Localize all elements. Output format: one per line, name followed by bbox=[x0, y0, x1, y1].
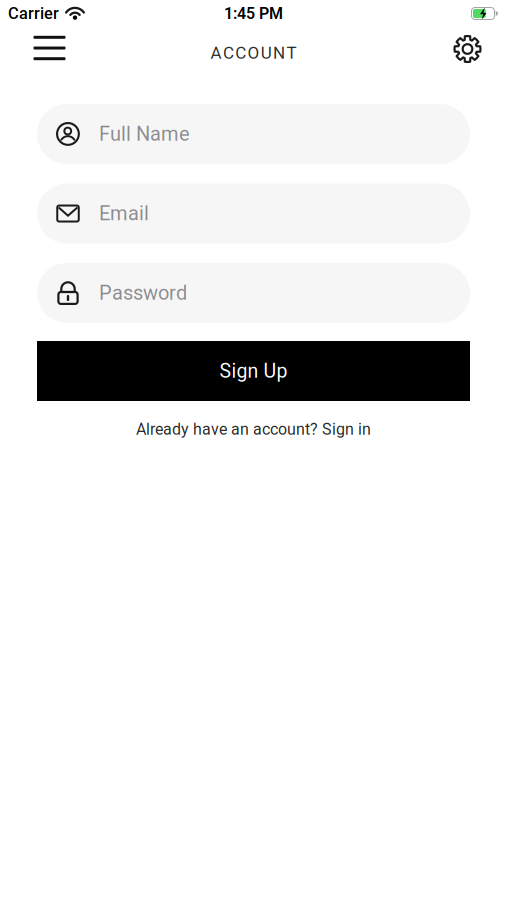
button[interactable]: Already have an account? Sign in bbox=[136, 420, 371, 439]
staticText: 1:45 PM bbox=[224, 4, 283, 23]
staticText: Carrier bbox=[8, 4, 59, 23]
button[interactable]: Sign Up bbox=[37, 341, 470, 401]
button[interactable]: Email bbox=[37, 183, 470, 243]
button[interactable]: Menu bbox=[27, 28, 71, 68]
staticText: Sign Up bbox=[219, 360, 287, 382]
staticText: ACCOUNT bbox=[211, 43, 296, 63]
staticText: Email bbox=[99, 202, 149, 225]
staticText: Full Name bbox=[99, 122, 190, 146]
button[interactable]: Settings bbox=[447, 28, 488, 69]
button[interactable]: Password bbox=[37, 263, 470, 323]
button[interactable]: Full Name bbox=[37, 104, 470, 164]
staticText: Already have an account? Sign in bbox=[136, 420, 371, 439]
staticText: Password bbox=[99, 281, 187, 305]
